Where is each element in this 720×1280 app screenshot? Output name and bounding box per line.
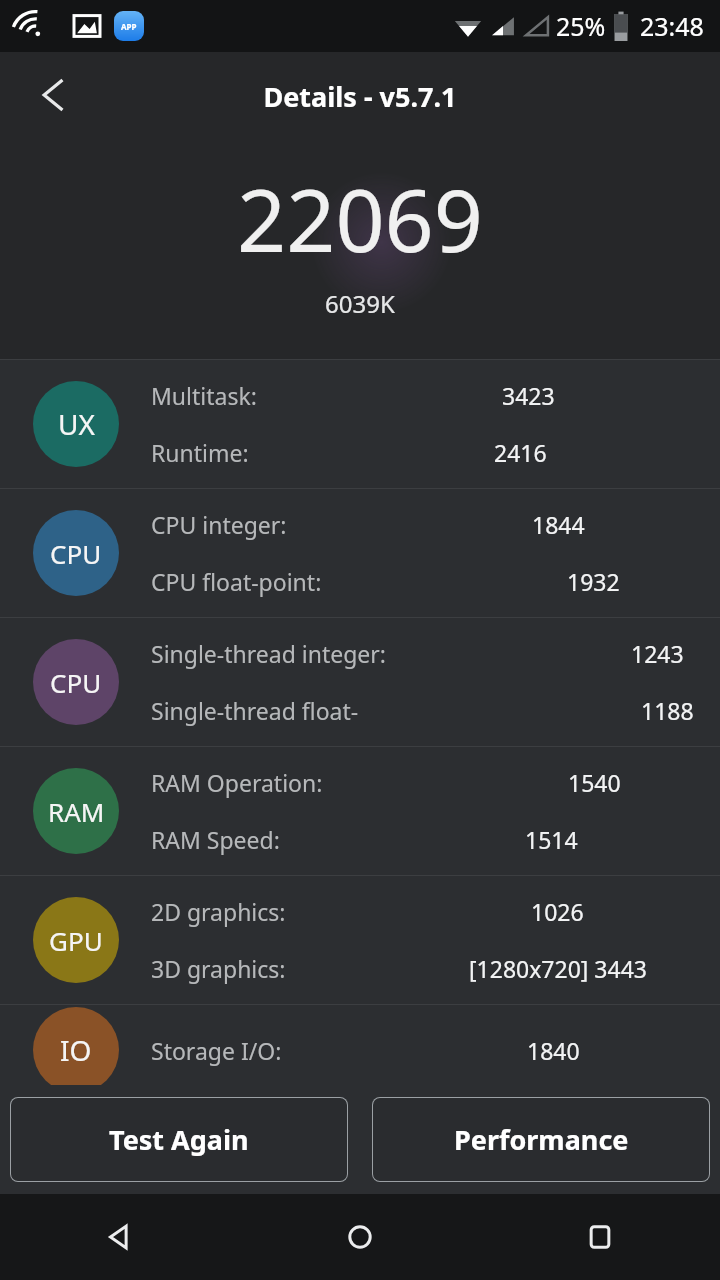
staticText: 1243 xyxy=(631,638,684,669)
button[interactable]: Performance xyxy=(372,1097,710,1182)
button[interactable]: Test Again xyxy=(10,1097,348,1182)
staticText: Storage I/O: xyxy=(151,1035,282,1066)
staticText: 1540 xyxy=(568,767,621,798)
staticText: 22069 xyxy=(237,160,483,277)
button[interactable]: UX xyxy=(0,360,720,488)
staticText: UX xyxy=(58,405,95,443)
staticText: Details - v5.7.1 xyxy=(0,78,720,115)
button[interactable]: RAM xyxy=(0,747,720,875)
staticText: CPU xyxy=(50,536,102,571)
staticText: 1932 xyxy=(567,566,620,597)
staticText: Runtime: xyxy=(151,437,249,468)
staticText: RAM Speed: xyxy=(151,824,280,855)
staticText: Test Again xyxy=(109,1121,249,1158)
staticText: 25% xyxy=(556,9,606,43)
staticText: RAM Operation: xyxy=(151,767,323,798)
staticText: 3423 xyxy=(502,380,555,411)
staticText: 23:48 xyxy=(640,9,704,43)
staticText: CPU integer: xyxy=(151,509,287,540)
button[interactable]: GPU xyxy=(0,876,720,1004)
button[interactable]: CPU xyxy=(0,489,720,617)
staticText: [1280x720] 3443 xyxy=(469,953,647,984)
staticText: Performance xyxy=(454,1121,629,1158)
button[interactable]: Home xyxy=(240,1194,480,1280)
button[interactable]: IO xyxy=(0,1005,720,1095)
staticText: 6039K xyxy=(325,287,395,320)
staticText: Single-thread integer: xyxy=(151,638,386,669)
button[interactable]: Back xyxy=(0,1194,240,1280)
staticText: 1514 xyxy=(525,824,578,855)
button[interactable]: CPU xyxy=(0,618,720,746)
button[interactable]: Back xyxy=(22,62,88,128)
button[interactable]: Recents xyxy=(480,1194,720,1280)
staticText: 2416 xyxy=(494,437,547,468)
staticText: 1188 xyxy=(641,695,694,726)
staticText: 1844 xyxy=(532,509,585,540)
staticText: CPU xyxy=(50,665,102,700)
staticText: 2D graphics: xyxy=(151,896,286,927)
staticText: IO xyxy=(60,1031,92,1069)
staticText: 1026 xyxy=(531,896,584,927)
staticText: RAM xyxy=(48,794,105,829)
staticText: GPU xyxy=(49,923,103,958)
staticText: 1840 xyxy=(527,1035,580,1066)
staticText: 3D graphics: xyxy=(151,953,286,984)
staticText: APP xyxy=(121,21,137,32)
staticText: Single-thread float-point: xyxy=(151,695,396,726)
staticText: CPU float-point: xyxy=(151,566,322,597)
staticText: Multitask: xyxy=(151,380,257,411)
